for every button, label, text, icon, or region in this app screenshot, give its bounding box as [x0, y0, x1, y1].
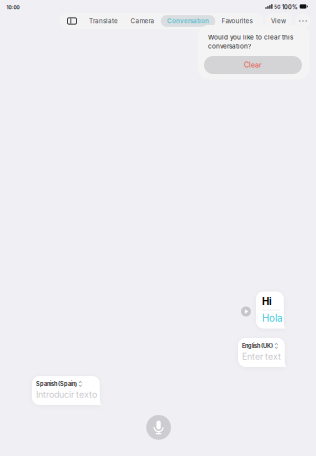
- staticText: 5G: [274, 5, 280, 10]
- button[interactable]: Play translation: [241, 306, 251, 316]
- staticText: View: [271, 17, 286, 25]
- staticText: Introducir texto: [36, 389, 97, 400]
- button[interactable]: More options: [295, 13, 310, 28]
- staticText: Camera: [130, 17, 154, 25]
- staticText: Favourites: [221, 17, 252, 25]
- button[interactable]: Camera: [124, 15, 161, 27]
- staticText: Hola: [262, 312, 282, 324]
- button[interactable]: Clear: [204, 56, 302, 74]
- button[interactable]: View: [265, 13, 292, 29]
- button[interactable]: Conversation: [161, 15, 215, 27]
- staticText: 100%: [282, 4, 298, 11]
- button[interactable]: Record: [146, 415, 171, 440]
- staticText: Hi: [262, 295, 272, 307]
- button[interactable]: Favourites: [215, 15, 259, 27]
- staticText: Clear: [244, 61, 262, 69]
- staticText: English (UK): [242, 342, 273, 349]
- staticText: 10:00: [6, 4, 19, 10]
- staticText: Translate: [89, 17, 118, 25]
- staticText: Would you like to clear this conversatio…: [208, 33, 293, 50]
- staticText: Spanish (Spain): [36, 380, 77, 387]
- staticText: Enter text: [242, 351, 281, 362]
- button[interactable]: Translate: [83, 15, 124, 27]
- staticText: Conversation: [167, 17, 209, 25]
- button[interactable]: Toggle sidebar: [61, 15, 83, 27]
